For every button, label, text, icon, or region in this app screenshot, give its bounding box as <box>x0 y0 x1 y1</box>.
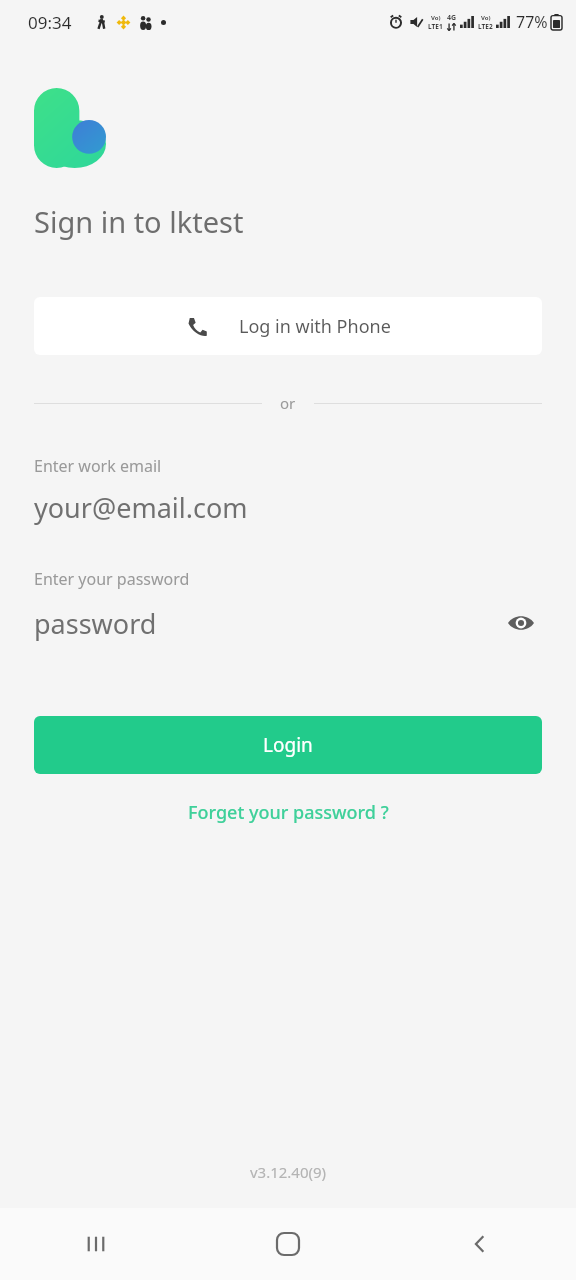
staticText: v3.12.40(9) <box>34 1162 542 1182</box>
staticText: Enter your password <box>34 568 190 590</box>
button[interactable]: your@email.com <box>34 489 542 526</box>
staticText: Forget your password ? <box>188 800 389 825</box>
staticText: Vo) <box>431 14 441 22</box>
button[interactable]: Home <box>192 1208 384 1280</box>
staticText: or <box>280 393 296 413</box>
button[interactable]: Forget your password ? <box>34 788 542 837</box>
button[interactable]: Login <box>34 716 542 774</box>
staticText: 4G <box>447 13 457 23</box>
staticText: password <box>34 605 157 642</box>
staticText: Login <box>263 732 313 758</box>
staticText: LTE1 <box>428 22 443 31</box>
staticText: 77% <box>516 11 548 33</box>
staticText: Enter work email <box>34 455 162 477</box>
staticText: 09:34 <box>28 11 72 34</box>
button[interactable]: Back <box>384 1208 576 1280</box>
button[interactable]: Show password <box>500 602 542 644</box>
staticText: LTE2 <box>478 22 493 31</box>
staticText: Log in with Phone <box>239 314 391 339</box>
button[interactable]: Recents <box>0 1208 192 1280</box>
staticText: Vo) <box>481 14 491 22</box>
staticText: Sign in to lktest <box>34 202 244 241</box>
button[interactable]: Log in with Phone <box>34 297 542 355</box>
staticText: your@email.com <box>34 489 248 526</box>
